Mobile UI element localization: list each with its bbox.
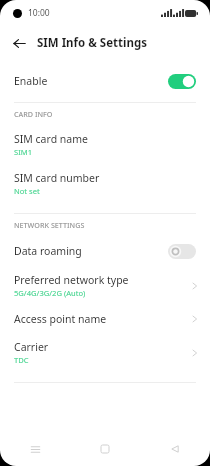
staticText: Access point name <box>14 312 107 326</box>
staticText: Data roaming <box>14 244 168 258</box>
button[interactable]: Data roaming <box>0 236 210 266</box>
staticText: 5G/4G/3G/2G (Auto) <box>14 288 86 298</box>
staticText: NETWORK SETTINGS <box>14 220 85 230</box>
staticText: Preferred network type <box>14 273 129 287</box>
staticText: Enable <box>14 74 168 88</box>
staticText: CARD INFO <box>14 109 53 119</box>
button[interactable]: Enable <box>0 66 210 96</box>
staticText: Carrier <box>14 340 49 354</box>
button[interactable]: Back <box>140 432 210 466</box>
staticText: SIM1 <box>14 147 32 157</box>
button[interactable]: SIM card name <box>0 125 210 164</box>
button[interactable]: Recents <box>0 432 70 466</box>
button[interactable]: Home <box>70 432 140 466</box>
staticText: SIM card number <box>14 171 100 185</box>
button[interactable]: Carrier <box>0 333 210 372</box>
staticText: SIM card name <box>14 132 88 146</box>
button[interactable]: Back <box>6 30 32 56</box>
button[interactable]: SIM card number <box>0 164 210 203</box>
button[interactable]: Preferred network type <box>0 266 210 305</box>
staticText: Not set <box>14 186 40 196</box>
staticText: SIM Info & Settings <box>37 35 147 51</box>
staticText: 10:00 <box>28 7 50 19</box>
staticText: TDC <box>14 355 29 365</box>
button[interactable]: Access point name <box>0 305 210 333</box>
